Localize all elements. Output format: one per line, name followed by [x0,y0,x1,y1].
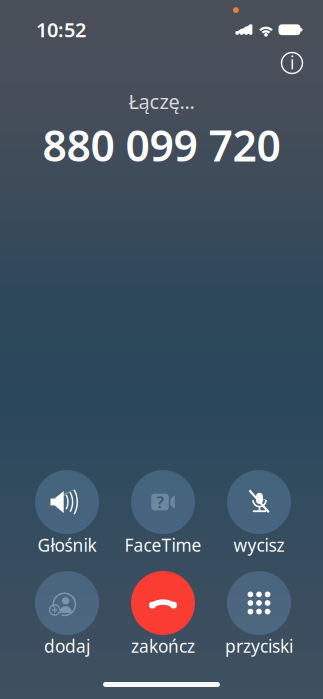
staticText: zakończ [131,634,195,657]
staticText: dodaj [44,634,90,657]
button[interactable]: ? [115,470,211,553]
staticText: Łączę... [128,88,194,115]
staticText: i [290,51,294,74]
staticText: 10:52 [36,16,86,43]
staticText: przyciski [225,634,293,657]
staticText: FaceTime [124,533,201,556]
button[interactable]: zakończ [115,571,211,654]
button[interactable]: Call info [273,44,311,82]
button[interactable]: przyciski [211,571,307,654]
button[interactable]: Głośnik [19,470,115,553]
button[interactable]: wycisz [211,470,307,553]
staticText: Głośnik [37,533,96,556]
staticText: 880 099 720 [42,117,280,173]
button[interactable]: dodaj [19,571,115,654]
staticText: ? [156,491,163,513]
staticText: wycisz [233,533,284,556]
